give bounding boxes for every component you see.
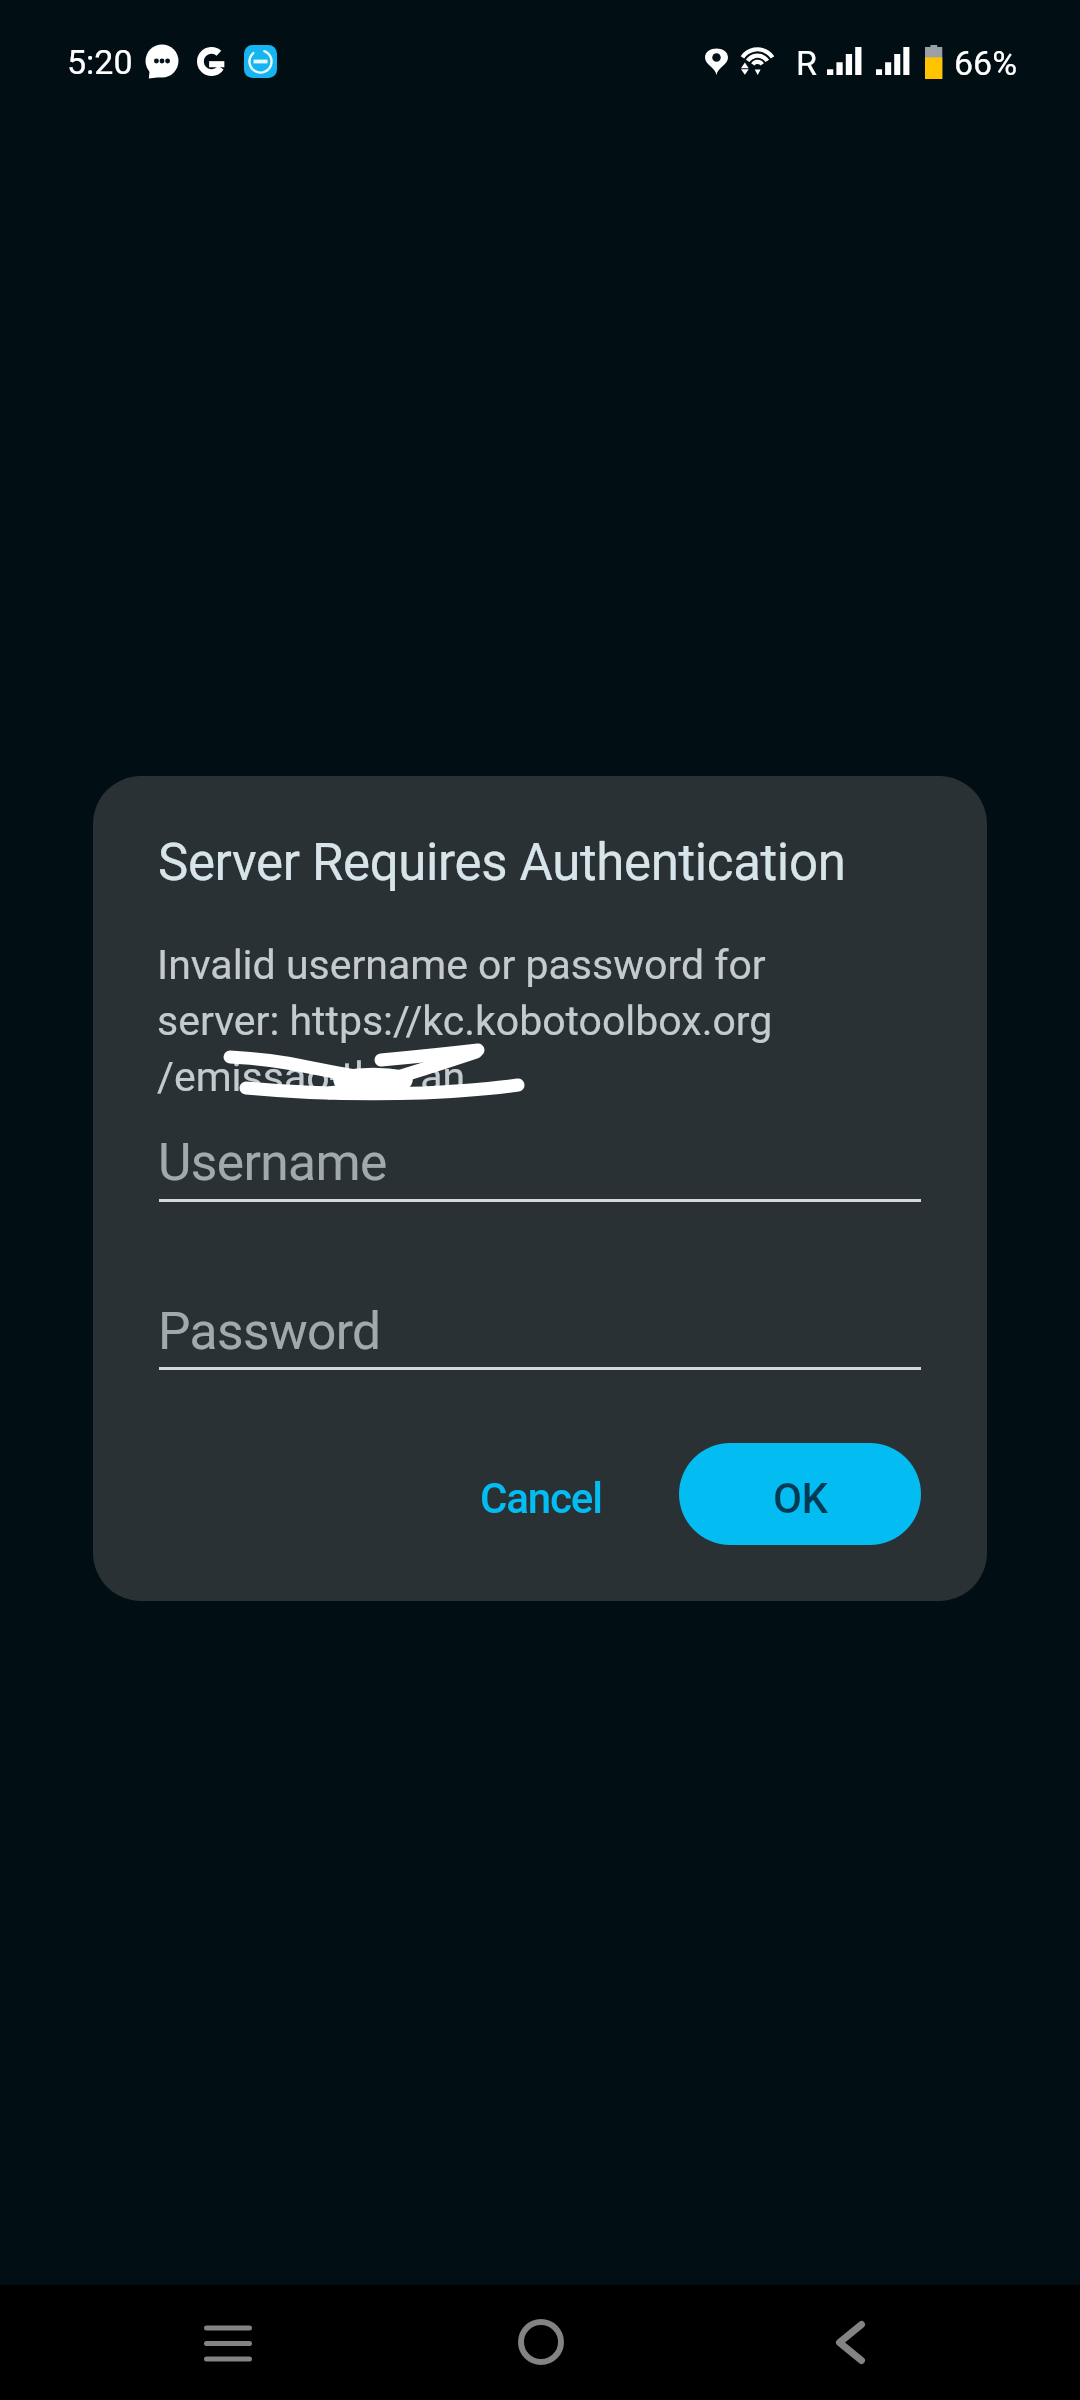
staticText: R (796, 43, 817, 83)
button[interactable]: Cancel (448, 1448, 634, 1548)
staticText: Password (158, 1301, 381, 1361)
staticText: OK (773, 1474, 828, 1523)
button[interactable]: Home (493, 2294, 589, 2390)
staticText: 66% (954, 43, 1018, 83)
button[interactable]: Recent apps (180, 2295, 276, 2391)
button[interactable]: Back (802, 2294, 898, 2390)
staticText: 5:20 (67, 42, 133, 82)
staticText: Server Requires Authentication (158, 833, 846, 893)
staticText: Invalid username or password for server:… (157, 941, 773, 1101)
staticText: Cancel (480, 1474, 602, 1523)
staticText: Username (158, 1132, 387, 1192)
button[interactable]: OK (679, 1443, 921, 1545)
